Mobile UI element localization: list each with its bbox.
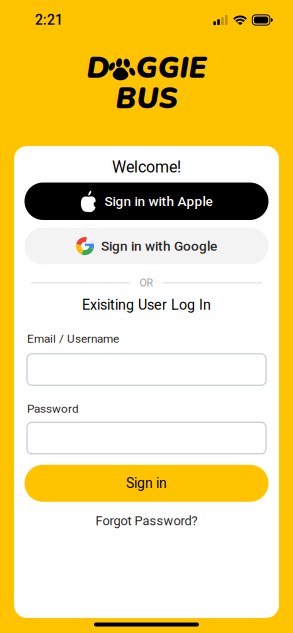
staticText: D <box>86 48 109 88</box>
staticText: Exisiting User Log In <box>82 296 211 313</box>
staticText: Forgot Password? <box>95 513 197 528</box>
button[interactable]: Forgot Password? <box>83 510 209 532</box>
staticText: Welcome! <box>112 158 181 176</box>
staticText: Sign in <box>126 475 167 491</box>
staticText: Password <box>27 402 79 416</box>
button[interactable]: Sign in <box>24 465 268 502</box>
staticText: 2:21 <box>35 12 63 28</box>
staticText: BUS <box>115 78 177 118</box>
staticText: Sign in with Apple <box>104 193 212 209</box>
button[interactable]: Sign in with Apple <box>24 182 268 220</box>
staticText: OR <box>139 276 153 289</box>
staticText: Sign in with Google <box>101 238 217 254</box>
button[interactable]: Sign in with Google <box>24 228 268 264</box>
staticText: Email / Username <box>27 332 119 346</box>
staticText: GGIE <box>135 48 206 88</box>
